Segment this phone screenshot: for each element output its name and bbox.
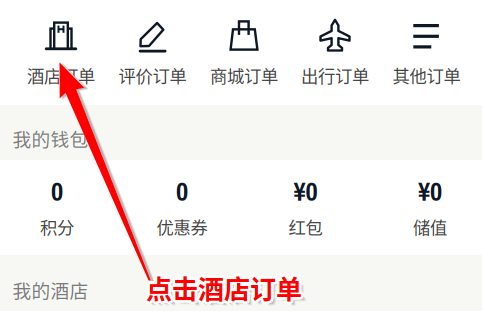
staticText: 红包 [288,214,322,239]
staticText: 点击酒店订单 [143,269,299,306]
staticText: 点击酒店订单 [151,273,307,311]
staticText: 点击酒店订单 [144,270,300,307]
button[interactable]: 酒店订单 [0,0,482,319]
button[interactable]: 0 [0,0,482,319]
button[interactable]: 0 [0,0,482,319]
staticText: 储值 [413,214,447,239]
staticText: 点击酒店订单 [144,267,300,304]
staticText: ¥0 [293,173,317,209]
staticText: 点击酒店订单 [144,268,300,305]
button[interactable]: 其他订单 [0,0,482,319]
button[interactable]: ¥0 [0,0,482,319]
staticText: 点击酒店订单 [147,271,303,309]
button[interactable]: ¥0 [0,0,482,319]
staticText: 点击酒店订单 [150,272,306,310]
staticText: 商城订单 [210,63,278,88]
staticText: 评价订单 [118,63,186,88]
staticText: 出行订单 [301,63,369,88]
staticText: 我的酒店 [13,276,89,303]
button[interactable]: 评价订单 [0,0,482,319]
staticText: 0 [176,173,188,209]
staticText: 点击酒店订单 [149,271,305,309]
staticText: 点击酒店订单 [144,271,300,308]
staticText: 点击酒店订单 [146,269,302,306]
staticText: 点击酒店订单 [146,271,302,309]
staticText: 点击酒店订单 [148,271,304,308]
staticText: 点击酒店订单 [149,269,305,306]
staticText: 积分 [40,214,74,239]
button[interactable]: 商城订单 [0,0,482,319]
staticText: 酒店订单 [27,63,95,88]
button[interactable]: 出行订单 [0,0,482,319]
staticText: 其他订单 [392,63,460,88]
staticText: ¥0 [418,173,442,209]
staticText: 点击酒店订单 [145,266,301,304]
staticText: 优惠券 [156,214,207,239]
staticText: 点击酒店订单 [146,266,302,304]
staticText: 点击酒店订单 [145,271,301,309]
staticText: 0 [51,173,63,209]
staticText: 点击酒店订单 [148,267,304,304]
staticText: 我的钱包 [13,125,89,152]
staticText: 点击酒店订单 [148,270,304,307]
staticText: 点击酒店订单 [148,268,304,305]
staticText: 点击酒店订单 [147,266,303,304]
